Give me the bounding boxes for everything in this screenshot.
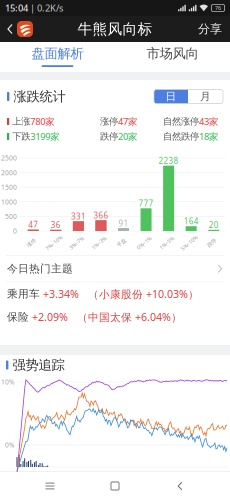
- staticText: 20家: [118, 130, 137, 143]
- staticText: 10%: [1, 378, 15, 386]
- staticText: 下跌: [12, 131, 30, 142]
- staticText: 47家: [118, 115, 137, 128]
- staticText: 牛熊风向标: [77, 20, 152, 38]
- staticText: 涨停: [26, 240, 36, 246]
- staticText: 5%~10%: [179, 239, 199, 247]
- staticText: 分享: [198, 22, 222, 36]
- staticText: 164: [184, 216, 199, 226]
- staticText: 36: [51, 219, 61, 230]
- staticText: 20: [209, 219, 219, 230]
- staticText: +3.34%: [40, 287, 79, 301]
- staticText: 780家: [30, 115, 54, 128]
- staticText: （中国太保 +6.04%）: [68, 310, 182, 324]
- staticText: 2500: [1, 154, 17, 162]
- staticText: 日: [165, 90, 176, 103]
- staticText: 跌停: [100, 131, 118, 142]
- button[interactable]: 市场风向: [115, 42, 230, 72]
- staticText: 0%~1%: [136, 239, 153, 247]
- staticText: 跌停: [207, 240, 217, 246]
- staticText: 自然跌停: [163, 131, 199, 142]
- staticText: （小康股份 +10.03%）: [79, 287, 199, 301]
- staticText: 1%~3%: [90, 239, 107, 247]
- staticText: 777: [139, 198, 154, 209]
- button[interactable]: 分享: [190, 16, 230, 42]
- button[interactable]: 保险: [0, 305, 230, 328]
- staticText: 平盘: [116, 240, 126, 246]
- staticText: 2000: [1, 168, 17, 177]
- staticText: 3199家: [30, 130, 59, 143]
- staticText: 盘面解析: [31, 45, 83, 62]
- button[interactable]: 盘面解析: [0, 42, 115, 72]
- staticText: 自然涨停: [163, 116, 199, 127]
- button[interactable]: 日: [154, 89, 188, 103]
- button[interactable]: 最近任务: [35, 474, 65, 498]
- button[interactable]: 今日热门主题: [0, 256, 230, 282]
- button[interactable]: 主屏幕: [100, 474, 130, 498]
- staticText: 上涨: [12, 116, 30, 127]
- staticText: 涨跌统计: [13, 88, 65, 105]
- button[interactable]: 乘用车: [0, 282, 230, 305]
- staticText: 91: [118, 218, 128, 229]
- staticText: 1%~5%: [158, 239, 175, 247]
- button[interactable]: 返回: [0, 16, 39, 42]
- staticText: 1500: [1, 183, 17, 192]
- staticText: 月: [200, 90, 211, 103]
- staticText: 2238: [159, 155, 179, 166]
- staticText: 乘用车: [7, 287, 40, 300]
- staticText: 47: [28, 219, 38, 230]
- staticText: 15:04: [5, 2, 28, 14]
- staticText: 3%~7%: [68, 239, 85, 247]
- staticText: 76: [215, 4, 221, 12]
- staticText: 涨停: [100, 116, 118, 127]
- staticText: | 0.2K/s: [28, 2, 63, 14]
- staticText: 43家: [199, 115, 218, 128]
- button[interactable]: 返回: [165, 474, 195, 498]
- staticText: 18家: [199, 130, 218, 143]
- staticText: 0%: [5, 441, 15, 449]
- staticText: 331: [71, 211, 86, 222]
- staticText: +2.09%: [29, 310, 68, 324]
- staticText: 0: [13, 227, 17, 235]
- staticText: 500: [5, 212, 17, 221]
- staticText: 今日热门主题: [7, 262, 73, 275]
- button[interactable]: 月: [188, 89, 223, 103]
- staticText: 强势追踪: [12, 357, 64, 373]
- staticText: 7%~10%: [44, 239, 64, 247]
- staticText: 366: [93, 210, 108, 221]
- staticText: 1000: [1, 197, 17, 206]
- staticText: 保险: [7, 310, 29, 323]
- staticText: 市场风向: [146, 45, 198, 62]
